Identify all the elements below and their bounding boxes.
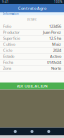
staticText: VER UBICACION	[16, 83, 47, 89]
staticText: Maiz	[52, 42, 61, 47]
staticText: Estado	[3, 54, 14, 59]
staticText: Ciclo	[3, 48, 12, 53]
staticText: Juan Perez	[43, 30, 61, 35]
staticText: Productor	[3, 30, 20, 35]
staticText: Folio	[3, 24, 11, 29]
staticText: 9:41	[2, 0, 9, 4]
staticText: 12.5 ha	[49, 36, 61, 41]
staticText: Activo	[50, 54, 61, 59]
staticText: Contrato Agro	[18, 6, 46, 11]
staticText: Norte	[51, 66, 61, 71]
staticText: 2024	[53, 48, 61, 53]
staticText: 100%	[54, 0, 62, 4]
staticText: Superficie	[3, 36, 20, 41]
staticText: Zona	[3, 66, 11, 71]
staticText: Informacion	[3, 12, 19, 16]
staticText: 01/05/24	[47, 60, 61, 65]
staticText: 123456	[49, 24, 61, 29]
staticText: detalle	[27, 18, 37, 21]
staticText: Cultivo	[3, 42, 15, 47]
button[interactable]: VER UBICACION	[0, 82, 64, 89]
staticText: Fecha	[3, 60, 13, 65]
